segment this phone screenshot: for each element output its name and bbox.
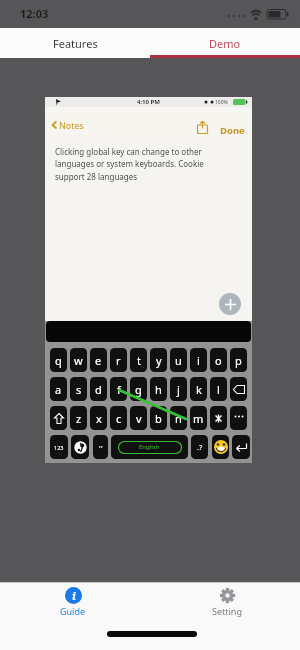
button[interactable]: Setting xyxy=(201,587,253,623)
button[interactable]: l xyxy=(210,377,227,401)
staticText: b xyxy=(155,411,162,426)
button[interactable]: r xyxy=(110,348,127,372)
button[interactable]: k xyxy=(190,377,207,401)
button[interactable]: 123 xyxy=(50,435,68,459)
button[interactable]: y xyxy=(150,348,167,372)
button[interactable]: c xyxy=(110,406,127,430)
staticText: a xyxy=(55,382,62,397)
button[interactable] xyxy=(230,377,247,401)
staticText: m xyxy=(193,411,204,426)
staticText: v xyxy=(136,411,142,426)
staticText: y xyxy=(156,353,162,368)
staticText: i xyxy=(197,353,200,368)
button[interactable]: Done xyxy=(220,124,245,137)
staticText: q xyxy=(55,353,62,368)
button[interactable]: t xyxy=(130,348,147,372)
button[interactable] xyxy=(219,293,241,315)
button[interactable]: o xyxy=(210,348,227,372)
button[interactable]: m xyxy=(190,406,207,430)
staticText: Demo xyxy=(209,36,241,51)
staticText: p xyxy=(235,353,242,368)
staticText: z xyxy=(76,411,82,426)
button[interactable]: q xyxy=(50,348,67,372)
button[interactable] xyxy=(230,406,247,430)
button[interactable]: .? xyxy=(191,435,208,459)
button[interactable]: English xyxy=(111,435,188,459)
staticText: k xyxy=(196,382,202,397)
staticText: 123 xyxy=(54,444,64,451)
staticText: s xyxy=(76,382,82,397)
staticText: d xyxy=(95,382,102,397)
staticText: .? xyxy=(197,442,203,452)
button[interactable]: i xyxy=(190,348,207,372)
button[interactable] xyxy=(197,121,208,134)
staticText: j xyxy=(177,382,180,397)
button[interactable] xyxy=(210,406,227,430)
staticText: h xyxy=(155,382,162,397)
button[interactable]: d xyxy=(90,377,107,401)
button[interactable]: Notes xyxy=(51,119,84,131)
button[interactable]: i xyxy=(47,587,99,623)
staticText: Features xyxy=(53,36,98,51)
staticText: 4:10 PM xyxy=(137,98,160,106)
staticText: ,, xyxy=(99,440,103,450)
button[interactable]: p xyxy=(230,348,247,372)
button[interactable]: h xyxy=(150,377,167,401)
button[interactable] xyxy=(212,435,229,459)
button[interactable]: b xyxy=(150,406,167,430)
staticText: n xyxy=(175,411,182,426)
staticText: Clicking global key can change to other … xyxy=(55,146,204,183)
button[interactable]: f xyxy=(110,377,127,401)
staticText: English xyxy=(139,443,160,451)
staticText: 12:03 xyxy=(20,6,49,21)
button[interactable]: Demo xyxy=(150,28,300,58)
button[interactable]: u xyxy=(170,348,187,372)
staticText: t xyxy=(137,353,141,368)
button[interactable]: g xyxy=(130,377,147,401)
button[interactable]: v xyxy=(130,406,147,430)
button[interactable]: a xyxy=(50,377,67,401)
button[interactable]: j xyxy=(170,377,187,401)
staticText: e xyxy=(95,353,102,368)
staticText: o xyxy=(215,353,222,368)
staticText: r xyxy=(116,353,121,368)
button[interactable]: Features xyxy=(0,28,150,58)
staticText: x xyxy=(96,411,102,426)
button[interactable]: s xyxy=(70,377,87,401)
button[interactable] xyxy=(50,406,67,430)
button[interactable]: z xyxy=(70,406,87,430)
button[interactable] xyxy=(232,435,250,459)
staticText: g xyxy=(135,382,142,397)
staticText: Setting xyxy=(212,605,242,617)
staticText: w xyxy=(74,353,83,368)
staticText: Guide xyxy=(60,605,86,617)
button[interactable]: x xyxy=(90,406,107,430)
staticText: l xyxy=(217,382,220,397)
button[interactable]: n xyxy=(170,406,187,430)
staticText: 100% xyxy=(215,99,228,106)
button[interactable]: w xyxy=(70,348,87,372)
staticText: Notes xyxy=(59,119,84,131)
staticText: c xyxy=(116,411,122,426)
staticText: f xyxy=(117,382,121,397)
button[interactable]: e xyxy=(90,348,107,372)
button[interactable]: ,, xyxy=(93,435,108,459)
staticText: i xyxy=(72,588,76,603)
button[interactable] xyxy=(71,435,89,459)
staticText: u xyxy=(175,353,182,368)
